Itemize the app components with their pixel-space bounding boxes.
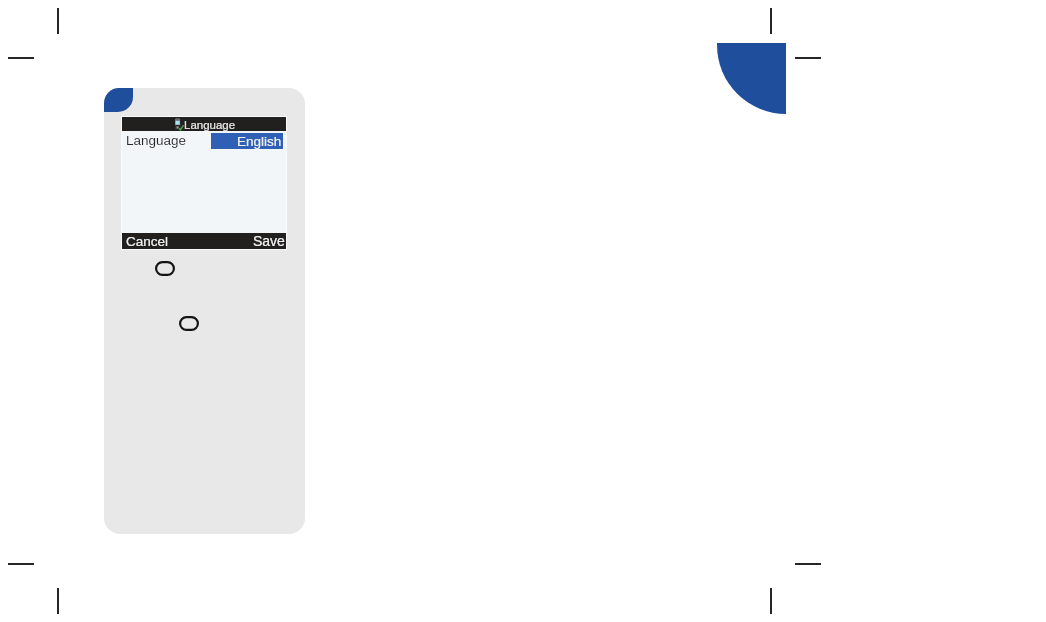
staticText: Cancel <box>126 234 169 249</box>
button[interactable]: English <box>211 133 283 149</box>
button[interactable]: Phone settings <box>122 117 286 131</box>
button[interactable]: Right soft key <box>179 316 199 331</box>
staticText: Language <box>126 133 187 148</box>
staticText: English <box>237 134 282 149</box>
staticText: Save <box>253 233 285 249</box>
staticText: Language <box>184 119 236 132</box>
button[interactable]: Cancel <box>122 234 171 249</box>
button[interactable]: Left soft key <box>155 261 175 276</box>
button[interactable]: Save <box>251 233 286 249</box>
other: Phone settings <box>173 118 184 131</box>
button[interactable]: Language <box>122 131 286 149</box>
